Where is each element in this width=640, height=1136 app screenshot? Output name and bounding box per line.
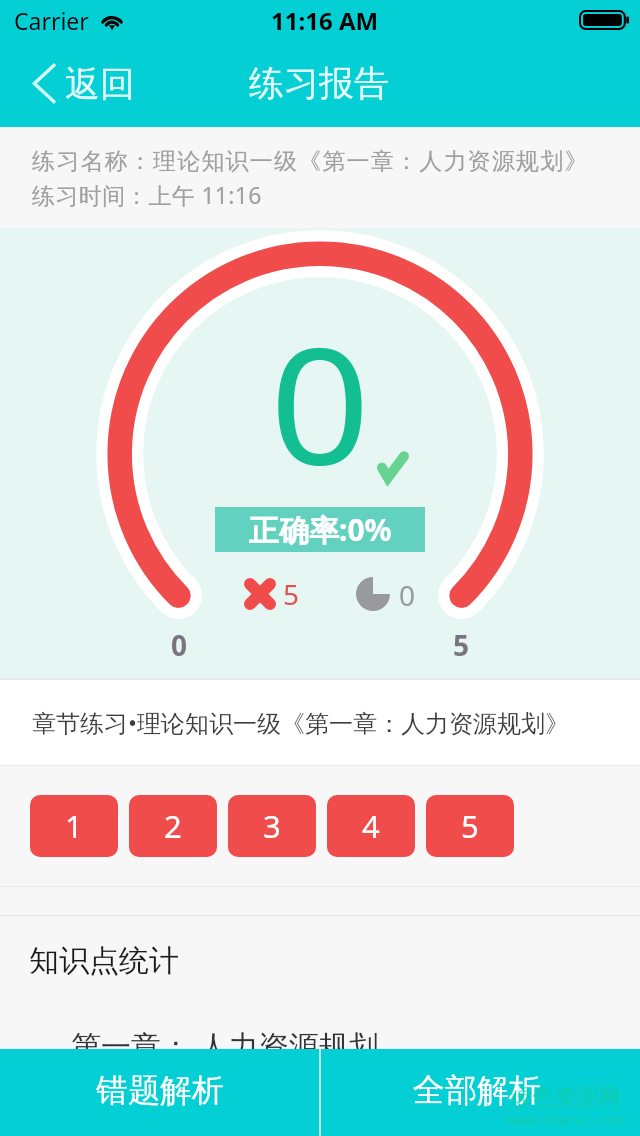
- staticText: 练习时间：上午 11:16: [32, 179, 262, 210]
- button[interactable]: 全部解析: [321, 1049, 640, 1136]
- staticText: 绿色资源网: [510, 1083, 620, 1111]
- staticText: 第一章： 人力资源规划: [71, 1025, 379, 1066]
- staticText: 练习名称：理论知识一级《第一章：人力资源规划》: [32, 147, 589, 176]
- button[interactable]: 3: [228, 795, 316, 857]
- staticText: 5: [441, 626, 481, 664]
- staticText: 正确率:0%: [249, 509, 392, 550]
- staticText: www.downcc.com: [506, 1110, 625, 1129]
- staticText: 3: [263, 805, 281, 847]
- button[interactable]: 章节练习•理论知识一级《第一章：人力资源规划》: [0, 680, 640, 765]
- staticText: Carrier: [14, 5, 89, 36]
- other: Back: [33, 63, 56, 104]
- button[interactable]: 1: [30, 795, 118, 857]
- staticText: 0: [159, 626, 199, 664]
- staticText: 2: [164, 805, 182, 847]
- staticText: 知识点统计: [29, 942, 179, 980]
- staticText: 5: [283, 575, 300, 613]
- button[interactable]: 5: [426, 795, 514, 857]
- button[interactable]: 4: [327, 795, 415, 857]
- staticText: 1: [65, 805, 83, 847]
- staticText: 章节练习•理论知识一级《第一章：人力资源规划》: [32, 706, 570, 739]
- staticText: 5: [461, 805, 479, 847]
- button[interactable]: 2: [129, 795, 217, 857]
- button[interactable]: 错题解析: [0, 1049, 319, 1136]
- staticText: 0: [399, 576, 416, 614]
- staticText: 11:16 AM: [271, 4, 379, 37]
- staticText: 全部解析: [413, 1070, 541, 1110]
- staticText: 返回: [65, 62, 135, 106]
- staticText: 4: [362, 805, 380, 847]
- staticText: 0: [227, 292, 413, 511]
- staticText: 练习报告: [0, 61, 639, 127]
- staticText: 错题解析: [96, 1070, 224, 1110]
- button[interactable]: Back: [0, 40, 153, 127]
